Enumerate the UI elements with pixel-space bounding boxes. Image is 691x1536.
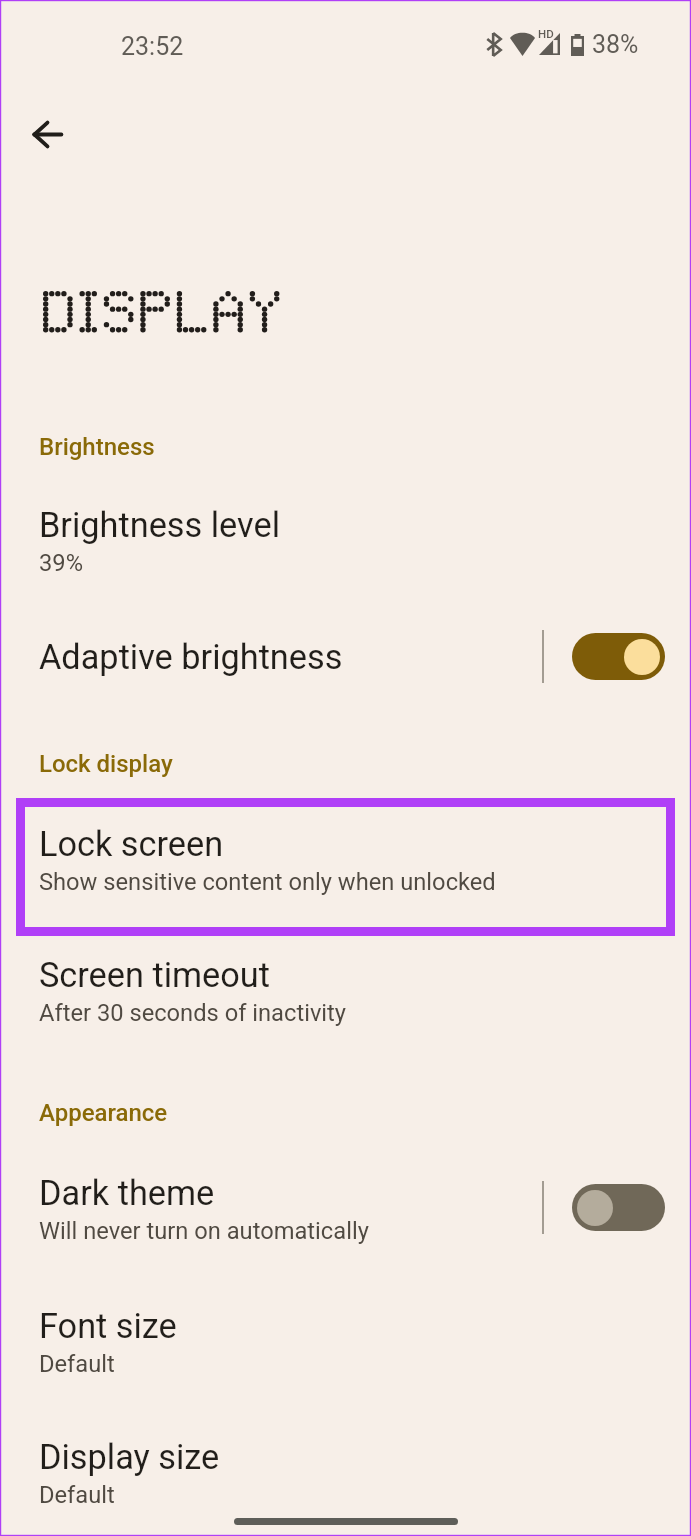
button[interactable]: Lock screen <box>16 798 675 936</box>
button[interactable]: Brightness level <box>0 485 691 595</box>
staticText: Lock screen <box>39 824 224 864</box>
button[interactable]: Adaptive brightness <box>0 630 691 683</box>
staticText: Dark theme <box>39 1173 215 1213</box>
staticText: Default <box>39 1481 115 1509</box>
staticText: 39% <box>39 549 83 577</box>
staticText: Adaptive brightness <box>39 637 343 677</box>
button[interactable]: Font size <box>0 1286 691 1398</box>
button[interactable]: Display size <box>0 1417 691 1529</box>
button[interactable]: Back <box>14 101 80 167</box>
staticText: 38% <box>592 30 639 59</box>
staticText: Default <box>39 1350 115 1378</box>
button[interactable]: Screen timeout <box>0 936 691 1048</box>
button[interactable]: Dark theme <box>0 1173 691 1241</box>
staticText: Show sensitive content only when unlocke… <box>39 868 496 896</box>
staticText: Display size <box>39 1437 220 1477</box>
staticText: Brightness level <box>39 505 280 545</box>
staticText: Brightness <box>39 433 155 461</box>
staticText: HD <box>538 27 554 40</box>
staticText: 23:52 <box>121 32 184 61</box>
staticText: Lock display <box>39 750 173 778</box>
staticText: Will never turn on automatically <box>39 1217 369 1245</box>
staticText: After 30 seconds of inactivity <box>39 999 347 1027</box>
staticText: Font size <box>39 1306 177 1346</box>
staticText: Screen timeout <box>39 955 270 995</box>
button[interactable]: Switch on <box>572 633 665 680</box>
button[interactable]: Switch off <box>572 1184 665 1231</box>
staticText: Appearance <box>39 1099 168 1127</box>
